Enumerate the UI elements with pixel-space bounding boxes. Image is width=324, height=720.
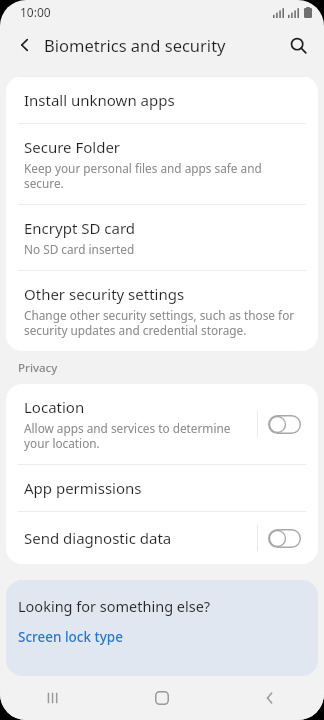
button[interactable]: Recents	[0, 676, 108, 720]
button[interactable]: Other security settings	[6, 271, 318, 351]
staticText: Send diagnostic data	[24, 528, 172, 548]
button[interactable]: Back	[216, 676, 324, 720]
button[interactable]: Home	[108, 676, 216, 720]
staticText: Encrypt SD card	[24, 218, 136, 238]
button[interactable]: Install unknown apps	[6, 77, 318, 123]
staticText: Secure Folder	[24, 137, 121, 157]
button[interactable]: App permissions	[6, 465, 318, 511]
staticText: 10:00	[20, 4, 51, 20]
staticText: Keep your personal files and apps safe a…	[24, 160, 304, 191]
button[interactable]: Screen lock type	[18, 628, 123, 646]
staticText: Looking for something else?	[18, 596, 211, 616]
staticText: Biometrics and security	[44, 34, 226, 56]
button[interactable]: Encrypt SD card	[6, 205, 318, 270]
button[interactable]: Back	[5, 25, 45, 65]
staticText: Screen lock type	[18, 628, 123, 646]
button[interactable]: Send diagnostic data	[6, 512, 318, 564]
button[interactable]: Toggle Send diagnostic data	[268, 527, 304, 549]
staticText: Change other security settings, such as …	[24, 307, 304, 338]
button[interactable]: Location	[6, 384, 318, 464]
staticText: Other security settings	[24, 284, 185, 304]
staticText: Privacy	[18, 360, 58, 376]
staticText: Allow apps and services to determine you…	[24, 420, 249, 451]
staticText: No SD card inserted	[24, 241, 135, 257]
staticText: App permissions	[24, 478, 142, 498]
button[interactable]: Toggle Location	[268, 413, 304, 435]
button[interactable]: Secure Folder	[6, 124, 318, 204]
staticText: Install unknown apps	[24, 90, 175, 110]
staticText: Location	[24, 397, 85, 417]
button[interactable]: Search	[276, 24, 320, 66]
